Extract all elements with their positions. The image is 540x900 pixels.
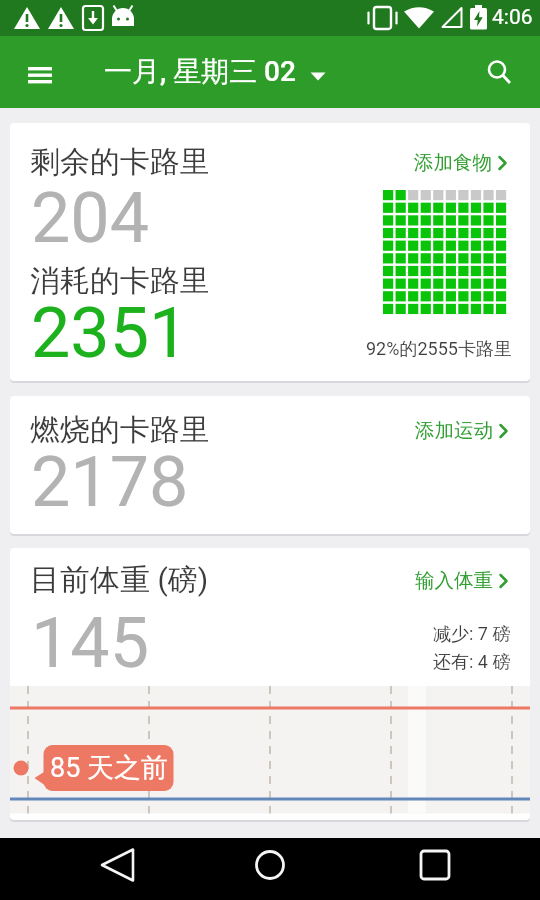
button[interactable]: 85 天之前: [44, 745, 174, 791]
staticText: 一月, 星期三 02: [104, 54, 296, 89]
button[interactable]: [478, 50, 522, 94]
staticText: 2351: [31, 292, 189, 374]
button[interactable]: [87, 841, 147, 897]
staticText: 204: [31, 177, 150, 259]
staticText: 添加食物: [414, 150, 492, 175]
staticText: 输入体重: [415, 568, 493, 593]
button[interactable]: 添加食物: [414, 150, 507, 175]
staticText: 添加运动: [415, 418, 493, 443]
staticText: 85 天之前: [50, 751, 169, 785]
staticText: 145: [31, 602, 150, 684]
button[interactable]: [87, 838, 147, 894]
staticText: 减少: 7 磅: [433, 623, 511, 646]
button[interactable]: 输入体重: [415, 568, 508, 593]
button[interactable]: [240, 841, 300, 897]
staticText: 消耗的卡路里: [30, 262, 210, 300]
button[interactable]: 一月, 星期三 02: [90, 36, 350, 108]
button[interactable]: [16, 56, 64, 92]
staticText: 4:06: [492, 5, 533, 30]
button[interactable]: 添加运动: [415, 418, 508, 443]
staticText: 2178: [31, 441, 189, 523]
staticText: 目前体重 (磅): [30, 561, 209, 599]
staticText: 还有: 4 磅: [433, 651, 511, 674]
button[interactable]: [405, 841, 465, 897]
staticText: 燃烧的卡路里: [30, 411, 210, 449]
staticText: 92%的2555卡路里: [366, 338, 512, 361]
staticText: 剩余的卡路里: [30, 143, 210, 181]
